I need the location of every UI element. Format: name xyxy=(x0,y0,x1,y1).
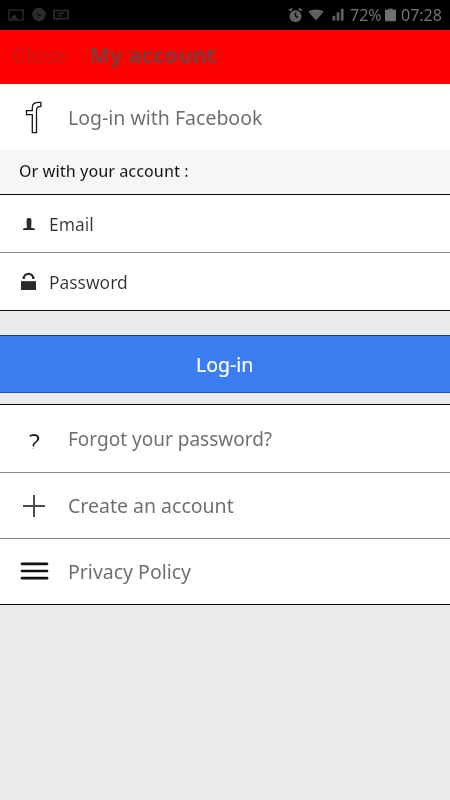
staticText: Log-in xyxy=(196,351,254,378)
other: Facebook xyxy=(26,102,41,133)
other: Help xyxy=(22,427,46,451)
button[interactable]: Create an account xyxy=(0,473,450,538)
staticText: Log-in with Facebook xyxy=(68,104,263,131)
staticText: Close xyxy=(12,40,67,69)
staticText: Or with your account : xyxy=(19,160,189,182)
button[interactable]: Log-in with Facebook xyxy=(0,84,450,150)
staticText: Forgot your password? xyxy=(68,426,273,452)
staticText: 07:28 xyxy=(401,4,442,26)
button[interactable]: Close xyxy=(12,27,67,81)
staticText: Create an account xyxy=(68,492,234,519)
staticText: ? xyxy=(29,425,40,449)
other: Menu xyxy=(22,562,47,580)
staticText: Password xyxy=(49,270,128,294)
button[interactable]: Password xyxy=(0,253,450,310)
staticText: Email xyxy=(49,212,94,236)
staticText: Privacy Policy xyxy=(68,558,192,585)
button[interactable]: Privacy Policy xyxy=(0,539,450,604)
staticText: My account xyxy=(89,39,216,69)
staticText: 72% xyxy=(350,4,382,26)
button[interactable]: Email xyxy=(0,195,450,252)
button[interactable]: Forgot your password? xyxy=(0,405,450,472)
button[interactable]: Log-in xyxy=(0,336,450,392)
other: Add xyxy=(23,495,45,517)
